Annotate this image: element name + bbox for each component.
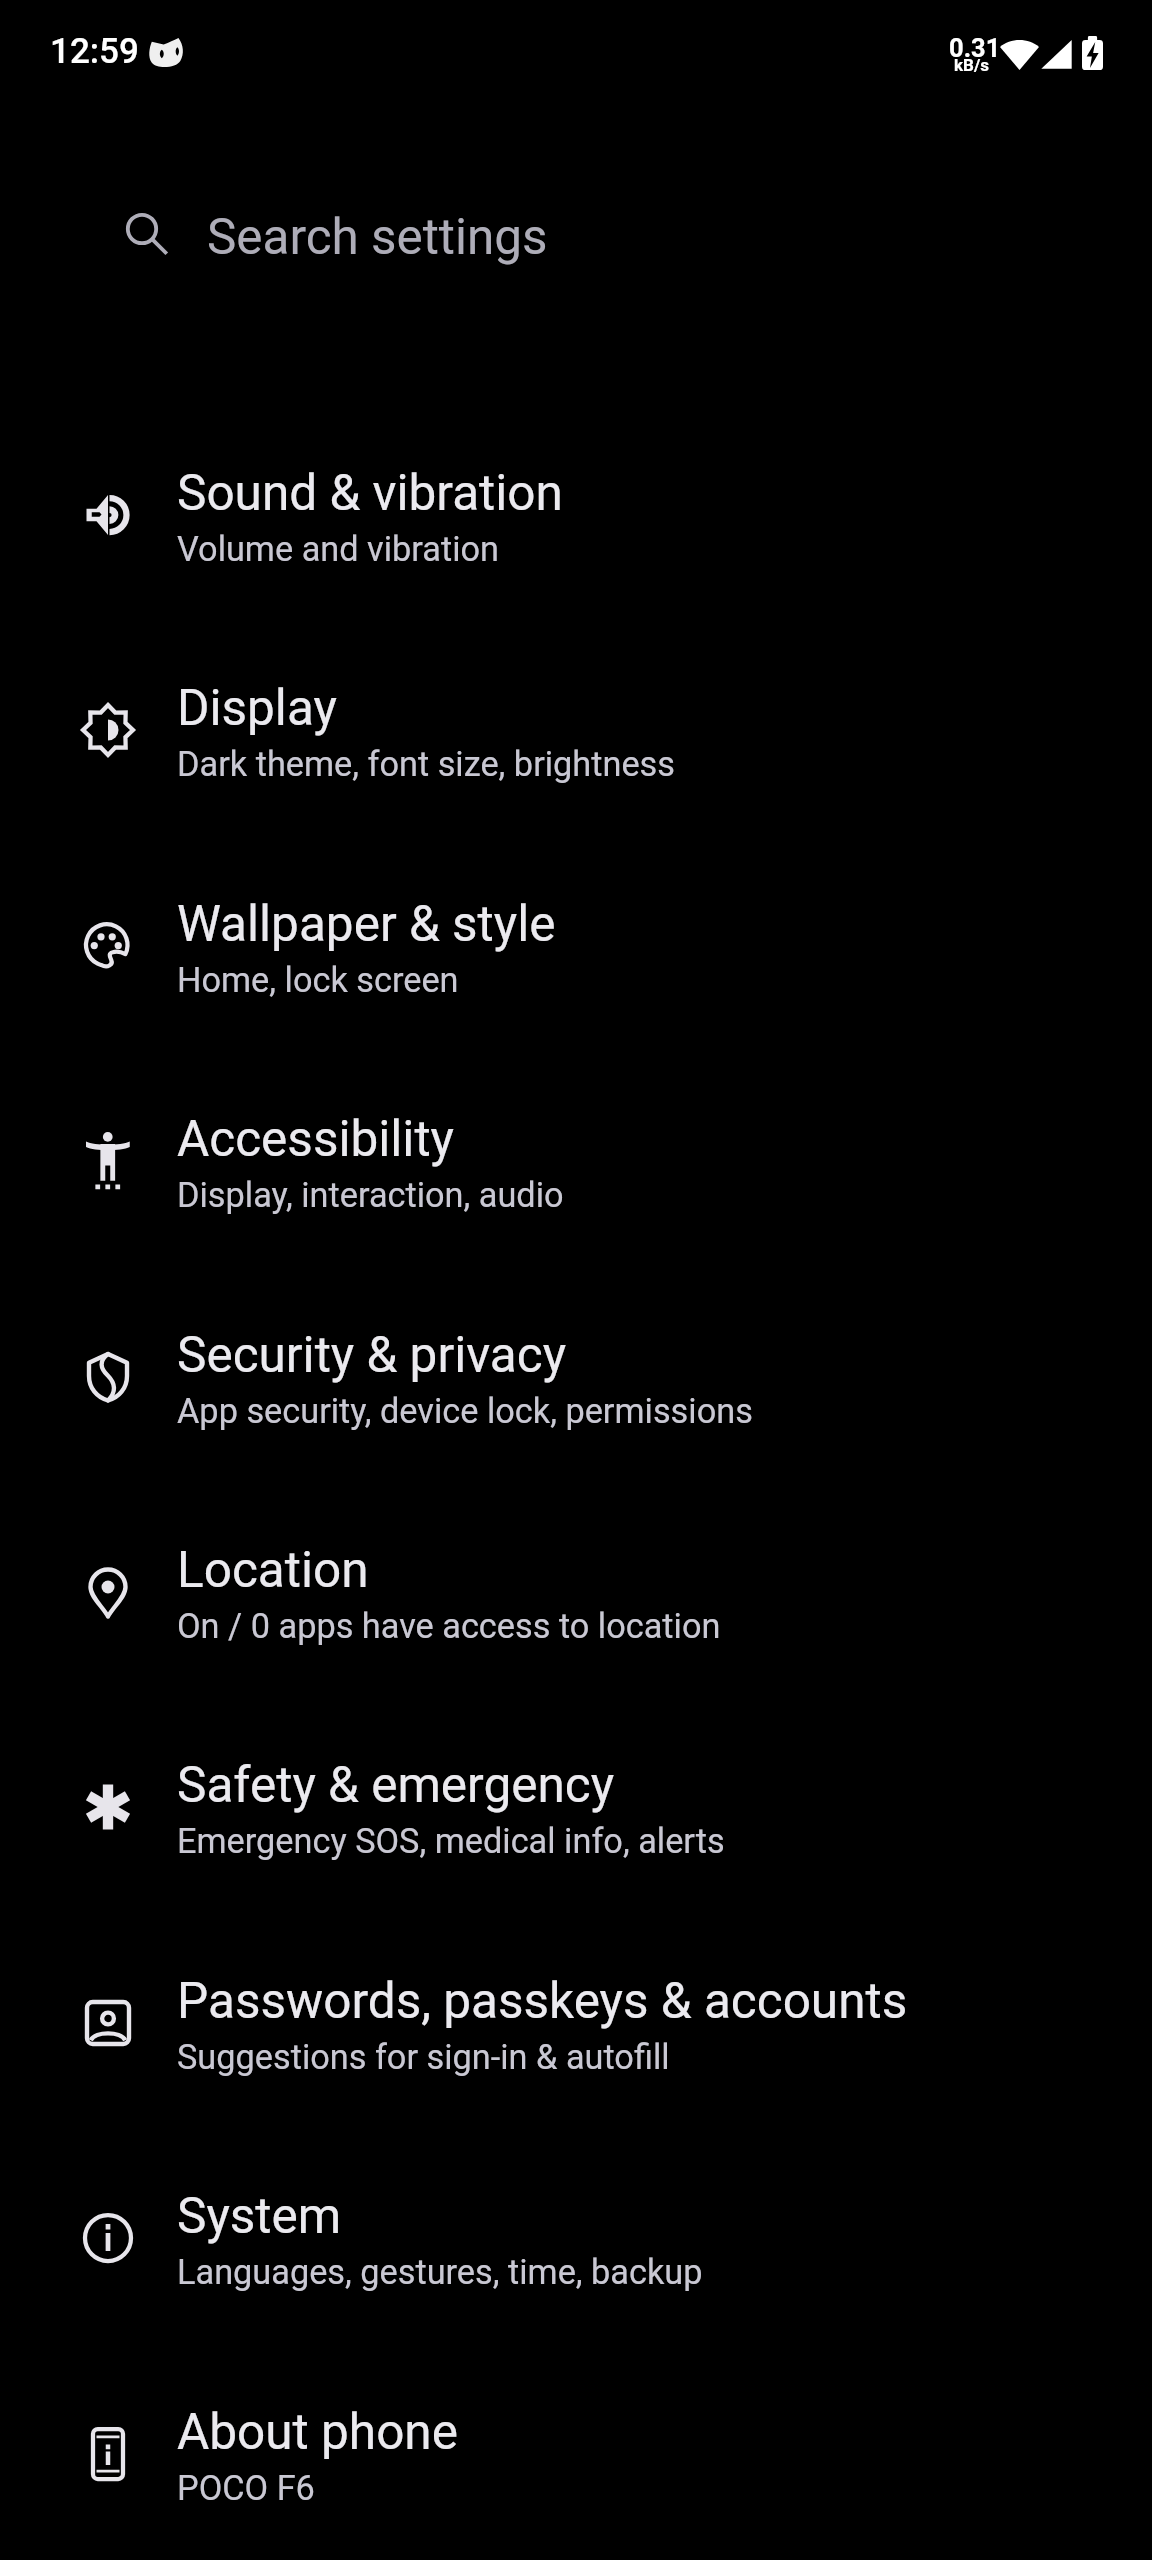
staticText: kB/s xyxy=(954,55,990,75)
staticText: App security, device lock, permissions xyxy=(177,1391,753,1431)
button[interactable]: Location xyxy=(0,1507,1152,1722)
button[interactable]: Sound & vibration xyxy=(0,430,1152,645)
staticText: About phone xyxy=(177,2403,458,2461)
button[interactable]: Wallpaper & style xyxy=(0,861,1152,1076)
button[interactable]: Search settings xyxy=(0,171,1152,303)
button[interactable]: Security & privacy xyxy=(0,1292,1152,1507)
staticText: Search settings xyxy=(207,208,548,266)
button[interactable]: Passwords, passkeys & accounts xyxy=(0,1938,1152,2153)
staticText: Accessibility xyxy=(177,1110,455,1168)
staticText: Display, interaction, audio xyxy=(177,1175,564,1215)
other: Cat xyxy=(147,38,184,69)
staticText: 12:59 xyxy=(50,31,139,72)
staticText: Emergency SOS, medical info, alerts xyxy=(177,1821,725,1861)
button[interactable]: About phone xyxy=(0,2369,1152,2560)
staticText: Home, lock screen xyxy=(177,960,459,1000)
staticText: System xyxy=(177,2187,342,2245)
staticText: Volume and vibration xyxy=(177,529,499,569)
staticText: Sound & vibration xyxy=(177,464,563,522)
button[interactable]: System xyxy=(0,2153,1152,2368)
button[interactable]: Safety & emergency xyxy=(0,1722,1152,1937)
staticText: Security & privacy xyxy=(177,1326,567,1384)
staticText: 0.31 xyxy=(949,33,1001,63)
staticText: POCO F6 xyxy=(177,2468,315,2508)
button[interactable]: Accessibility xyxy=(0,1076,1152,1291)
staticText: Suggestions for sign-in & autofill xyxy=(177,2037,670,2077)
staticText: Languages, gestures, time, backup xyxy=(177,2252,703,2292)
staticText: Display xyxy=(177,679,337,737)
staticText: On / 0 apps have access to location xyxy=(177,1606,721,1646)
button[interactable]: Display xyxy=(0,645,1152,860)
staticText: Location xyxy=(177,1541,369,1599)
staticText: Dark theme, font size, brightness xyxy=(177,744,675,784)
staticText: Safety & emergency xyxy=(177,1756,615,1814)
staticText: Wallpaper & style xyxy=(177,895,556,953)
staticText: Passwords, passkeys & accounts xyxy=(177,1972,908,2030)
